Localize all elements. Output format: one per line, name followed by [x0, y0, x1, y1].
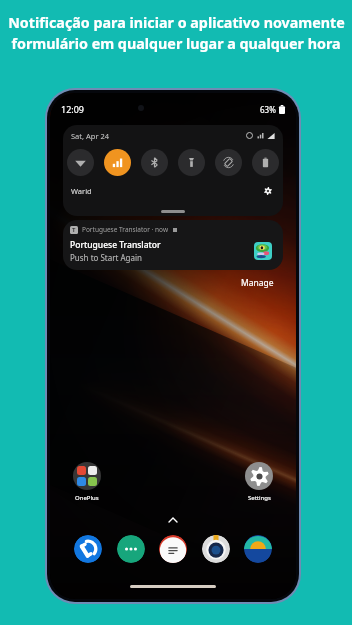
staticText: 63%	[260, 104, 276, 115]
staticText: Notificação para iniciar o aplicativo no…	[8, 13, 345, 32]
staticText: Sat, Apr 24	[71, 131, 110, 141]
button[interactable]: Settings	[261, 184, 275, 198]
button[interactable]: Flashlight	[178, 149, 205, 176]
staticText: Portuguese Translator	[70, 239, 161, 251]
button[interactable]: Bluetooth	[141, 149, 168, 176]
staticText: Settings	[248, 494, 271, 502]
button[interactable]: Phone	[74, 535, 102, 563]
button[interactable]: Auto rotate	[215, 149, 242, 176]
button[interactable]: Photos	[244, 535, 272, 563]
staticText: Warid	[71, 186, 92, 196]
staticText: Push to Start Again	[70, 252, 143, 263]
button[interactable]: Mobile data	[104, 149, 131, 176]
staticText: Manage	[241, 277, 274, 289]
button[interactable]: Chrome	[202, 535, 230, 563]
button[interactable]: Battery saver	[252, 149, 279, 176]
button[interactable]: Wi-Fi	[67, 149, 94, 176]
staticText: formulário em qualquer lugar a qualquer …	[11, 34, 341, 53]
button[interactable]: T	[63, 220, 283, 270]
staticText: T	[72, 226, 76, 234]
staticText: OnePlus	[75, 494, 99, 502]
staticText: Portuguese Translator · now	[82, 225, 169, 234]
button[interactable]: Gmail	[159, 535, 187, 563]
button[interactable]: OnePlus folder	[73, 462, 101, 502]
button[interactable]: Settings	[245, 462, 273, 502]
button[interactable]: Manage	[241, 277, 274, 289]
button[interactable]: Messages	[117, 535, 145, 563]
staticText: 12:09	[61, 103, 85, 115]
